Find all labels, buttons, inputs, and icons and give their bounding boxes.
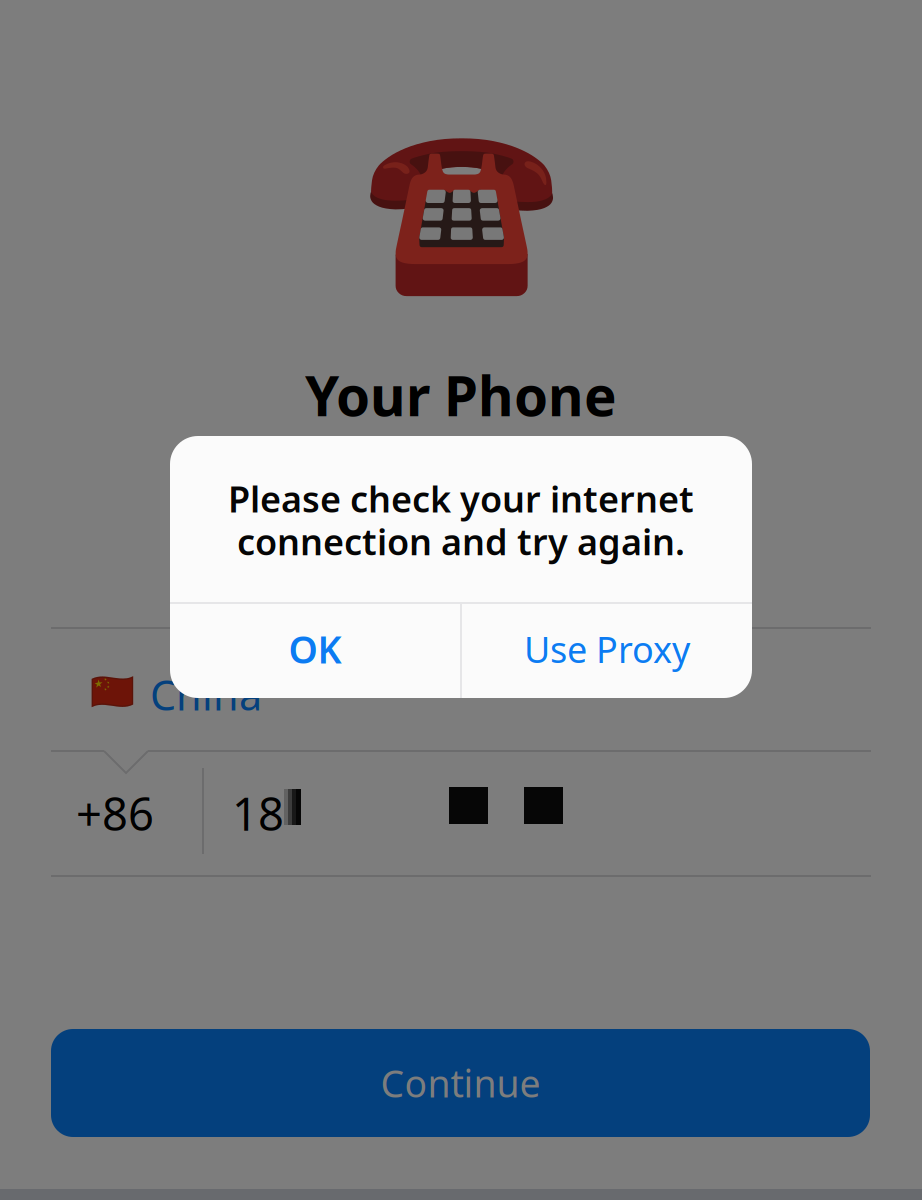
staticText: Please check your internet [228,475,694,522]
staticText: connection and try again. [237,517,685,565]
staticText: 🇨🇳 [90,671,135,712]
staticText: +86 [76,783,154,843]
button[interactable]: +86 [51,752,202,876]
staticText: 18 [232,783,284,843]
staticText: OK [288,624,341,674]
button[interactable]: Continue [51,1029,870,1137]
staticText: China [150,667,262,722]
button[interactable]: OK [170,604,460,698]
button[interactable]: Use Proxy [462,604,752,698]
staticText: Use Proxy [524,625,690,673]
button[interactable]: 18 [206,752,874,876]
staticText: ☎️ [361,117,560,299]
staticText: Your Phone [305,359,617,431]
staticText: Continue [380,1058,540,1108]
button[interactable]: 🇨🇳 [51,629,871,750]
